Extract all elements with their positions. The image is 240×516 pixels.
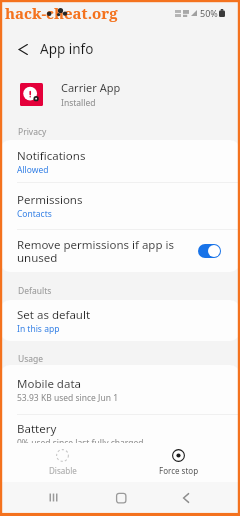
button[interactable]: Back <box>172 484 199 511</box>
staticText: Defaults <box>18 285 52 297</box>
button[interactable]: Home <box>107 484 134 511</box>
button[interactable]: Battery <box>0 415 240 464</box>
staticText: Permissions <box>17 192 83 208</box>
staticText: In this app <box>17 323 60 335</box>
staticText: Remove permissions if app is unused <box>17 237 184 266</box>
button[interactable]: Set as default <box>0 300 240 341</box>
staticText: Force stop <box>159 465 199 476</box>
staticText: Battery <box>17 421 57 437</box>
staticText: Installed <box>61 97 96 109</box>
button[interactable]: Recent apps <box>40 484 67 511</box>
button[interactable]: Disable <box>37 443 88 482</box>
staticText: 0% used since last fully charged <box>17 437 144 449</box>
staticText: App info <box>40 40 94 58</box>
staticText: Usage <box>18 353 44 365</box>
staticText: 50% <box>200 7 218 19</box>
staticText: Contacts <box>17 208 52 220</box>
staticText: 53.93 KB used since Jun 1 <box>17 392 118 404</box>
staticText: Carrier App <box>61 80 121 95</box>
staticText: Mobile data <box>17 376 81 392</box>
button[interactable]: Notifications <box>0 140 240 182</box>
staticText: hack-cheat.org <box>5 3 118 23</box>
button[interactable]: Navigate up <box>7 33 39 65</box>
button[interactable]: Force stop <box>153 443 204 482</box>
staticText: Set as default <box>17 307 91 323</box>
staticText: Privacy <box>18 126 47 138</box>
staticText: Allowed <box>17 164 49 176</box>
button[interactable]: Permissions <box>0 183 240 229</box>
staticText: Notifications <box>17 148 86 164</box>
button[interactable]: Mobile data <box>0 365 240 414</box>
staticText: Disable <box>49 465 77 476</box>
button[interactable]: Remove permissions if app is unused <box>0 230 240 272</box>
